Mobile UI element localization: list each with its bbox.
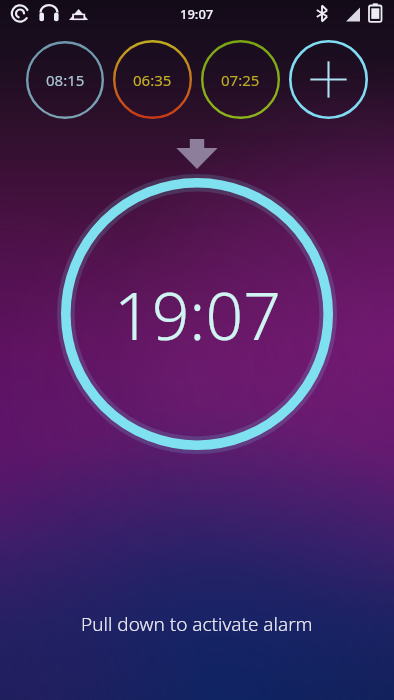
button[interactable]: 08:15	[26, 41, 104, 119]
staticText: 08:15	[46, 70, 85, 90]
other: Pull down	[173, 139, 221, 169]
button[interactable]: Current time 19:07	[61, 178, 333, 450]
staticText: 19:07	[114, 269, 281, 359]
button[interactable]: 07:25	[201, 40, 280, 119]
staticText: 19:07	[180, 5, 214, 23]
staticText: Pull down to activate alarm	[81, 611, 313, 637]
button[interactable]: Pull down to activate alarm	[0, 611, 394, 637]
button[interactable]: Add alarm	[289, 40, 368, 119]
button[interactable]: 06:35	[113, 40, 192, 119]
staticText: 06:35	[133, 70, 172, 90]
staticText: 07:25	[221, 70, 260, 90]
